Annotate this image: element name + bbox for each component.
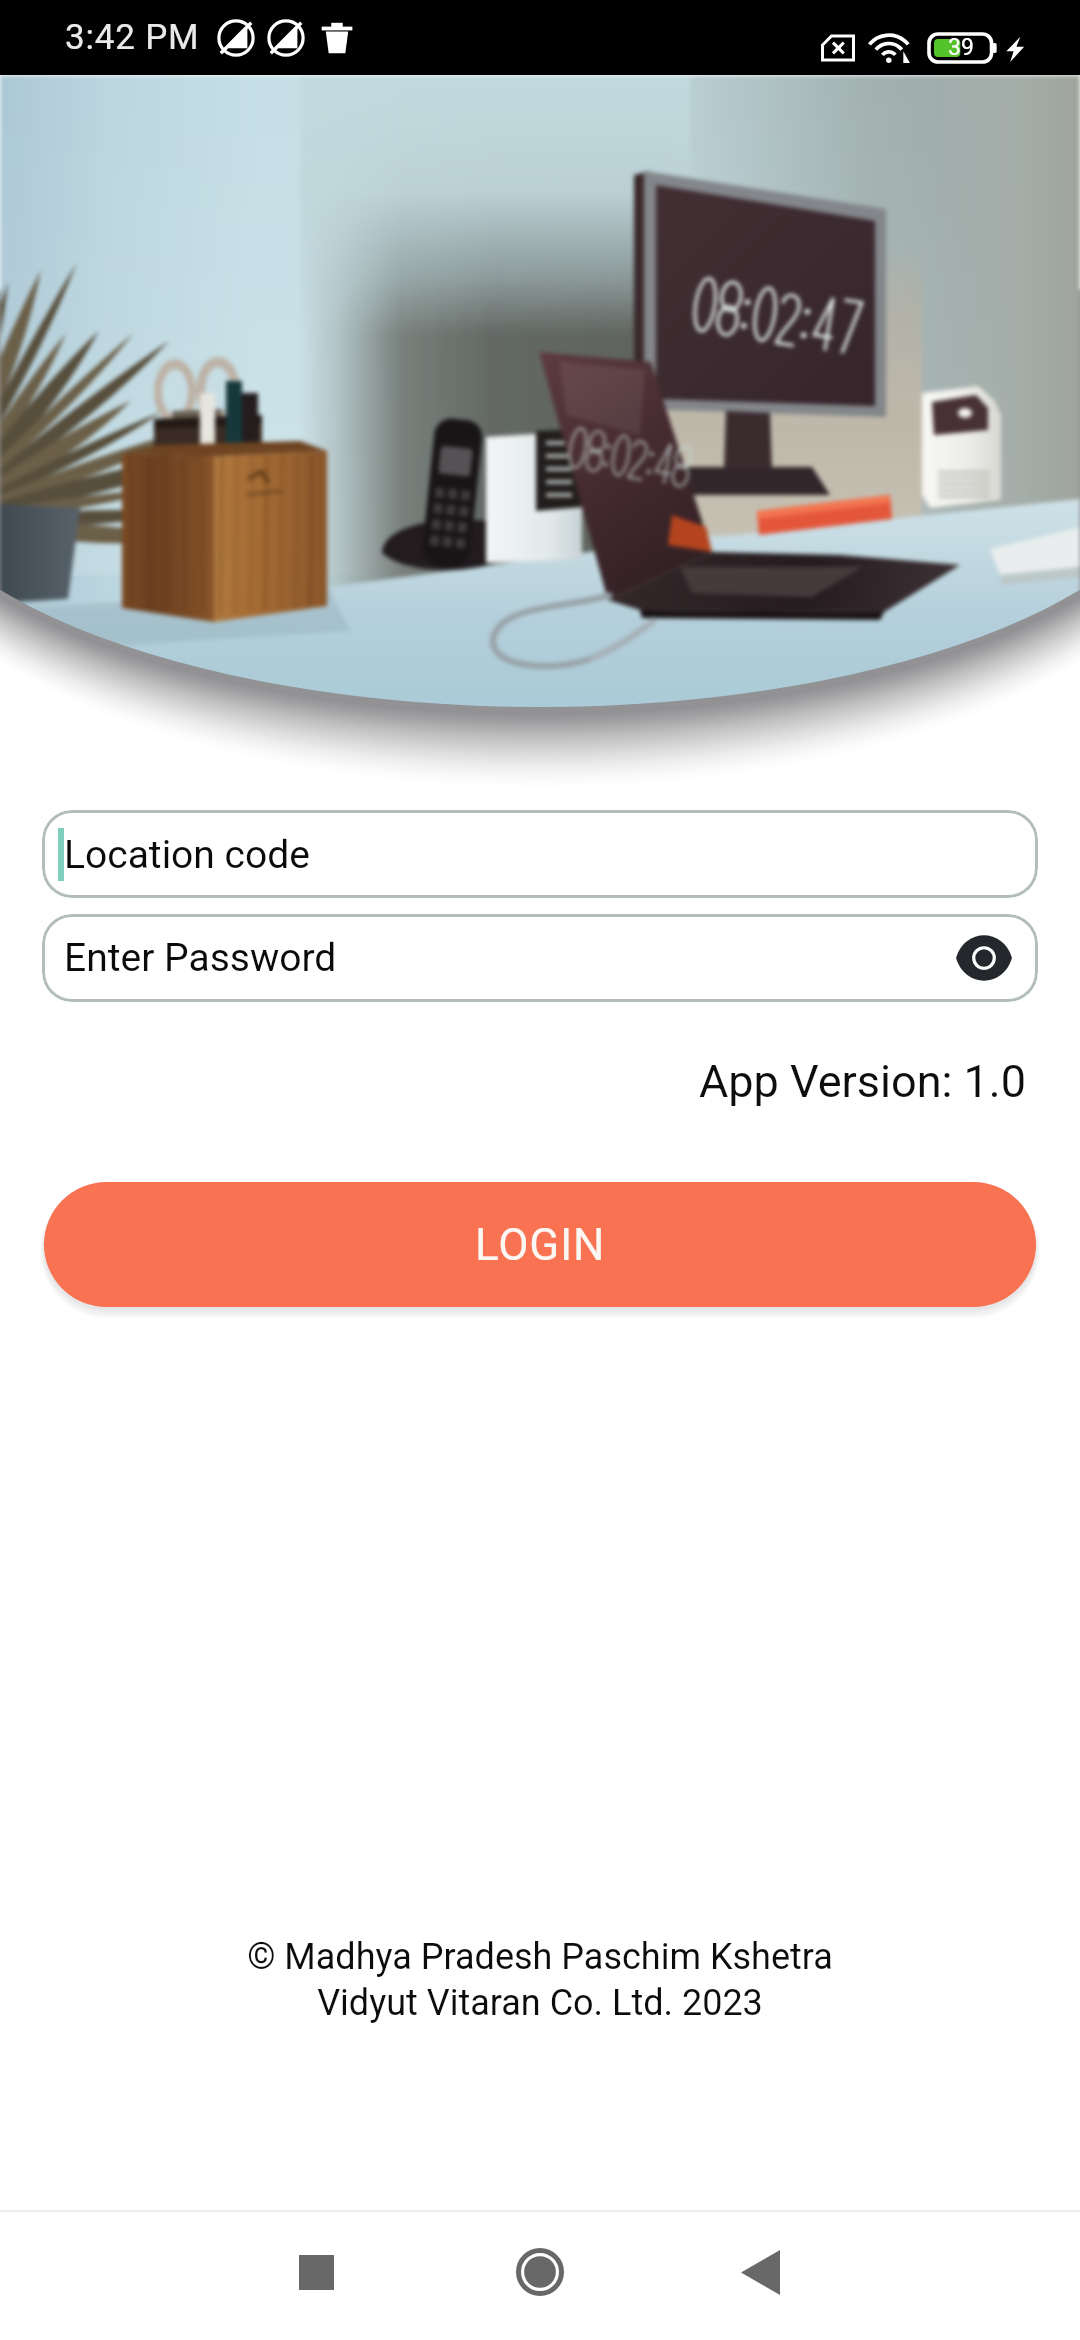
- staticText: 39: [948, 34, 974, 61]
- staticText: LOGIN: [475, 1219, 606, 1271]
- staticText: Location code: [64, 832, 310, 878]
- button[interactable]: LOGIN: [44, 1182, 1036, 1307]
- staticText: © Madhya Pradesh Paschim Kshetra Vidyut …: [0, 1936, 1080, 2023]
- button[interactable]: Location code: [42, 810, 1038, 898]
- button[interactable]: Back: [706, 2218, 814, 2326]
- staticText: Enter Password: [64, 935, 337, 981]
- staticText: App Version: 1.0: [0, 1055, 1026, 1108]
- button[interactable]: Enter Password: [42, 914, 1038, 1002]
- button[interactable]: Recent apps: [262, 2218, 370, 2326]
- button[interactable]: Home: [486, 2218, 594, 2326]
- button[interactable]: Show password: [952, 926, 1016, 990]
- staticText: 3:42 PM: [65, 17, 200, 58]
